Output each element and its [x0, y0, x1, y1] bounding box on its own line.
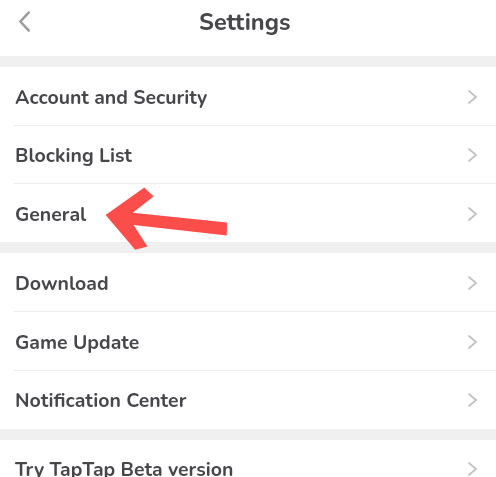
button[interactable]: Try TapTap Beta version [0, 439, 496, 477]
button[interactable]: Blocking List [0, 125, 496, 184]
staticText: Download [15, 270, 109, 296]
button[interactable]: Download [0, 253, 496, 312]
button[interactable]: Account and Security [0, 67, 496, 126]
button[interactable]: Game Update [0, 312, 496, 371]
button[interactable]: General [0, 184, 496, 243]
staticText: Settings [199, 6, 291, 38]
button[interactable]: Back [2, 0, 48, 42]
staticText: Try TapTap Beta version [15, 456, 234, 477]
button[interactable]: Notification Center [0, 370, 496, 429]
staticText: General [15, 201, 87, 227]
staticText: Blocking List [15, 142, 132, 168]
staticText: Notification Center [15, 387, 187, 413]
staticText: Game Update [15, 329, 140, 355]
staticText: Account and Security [15, 84, 208, 110]
